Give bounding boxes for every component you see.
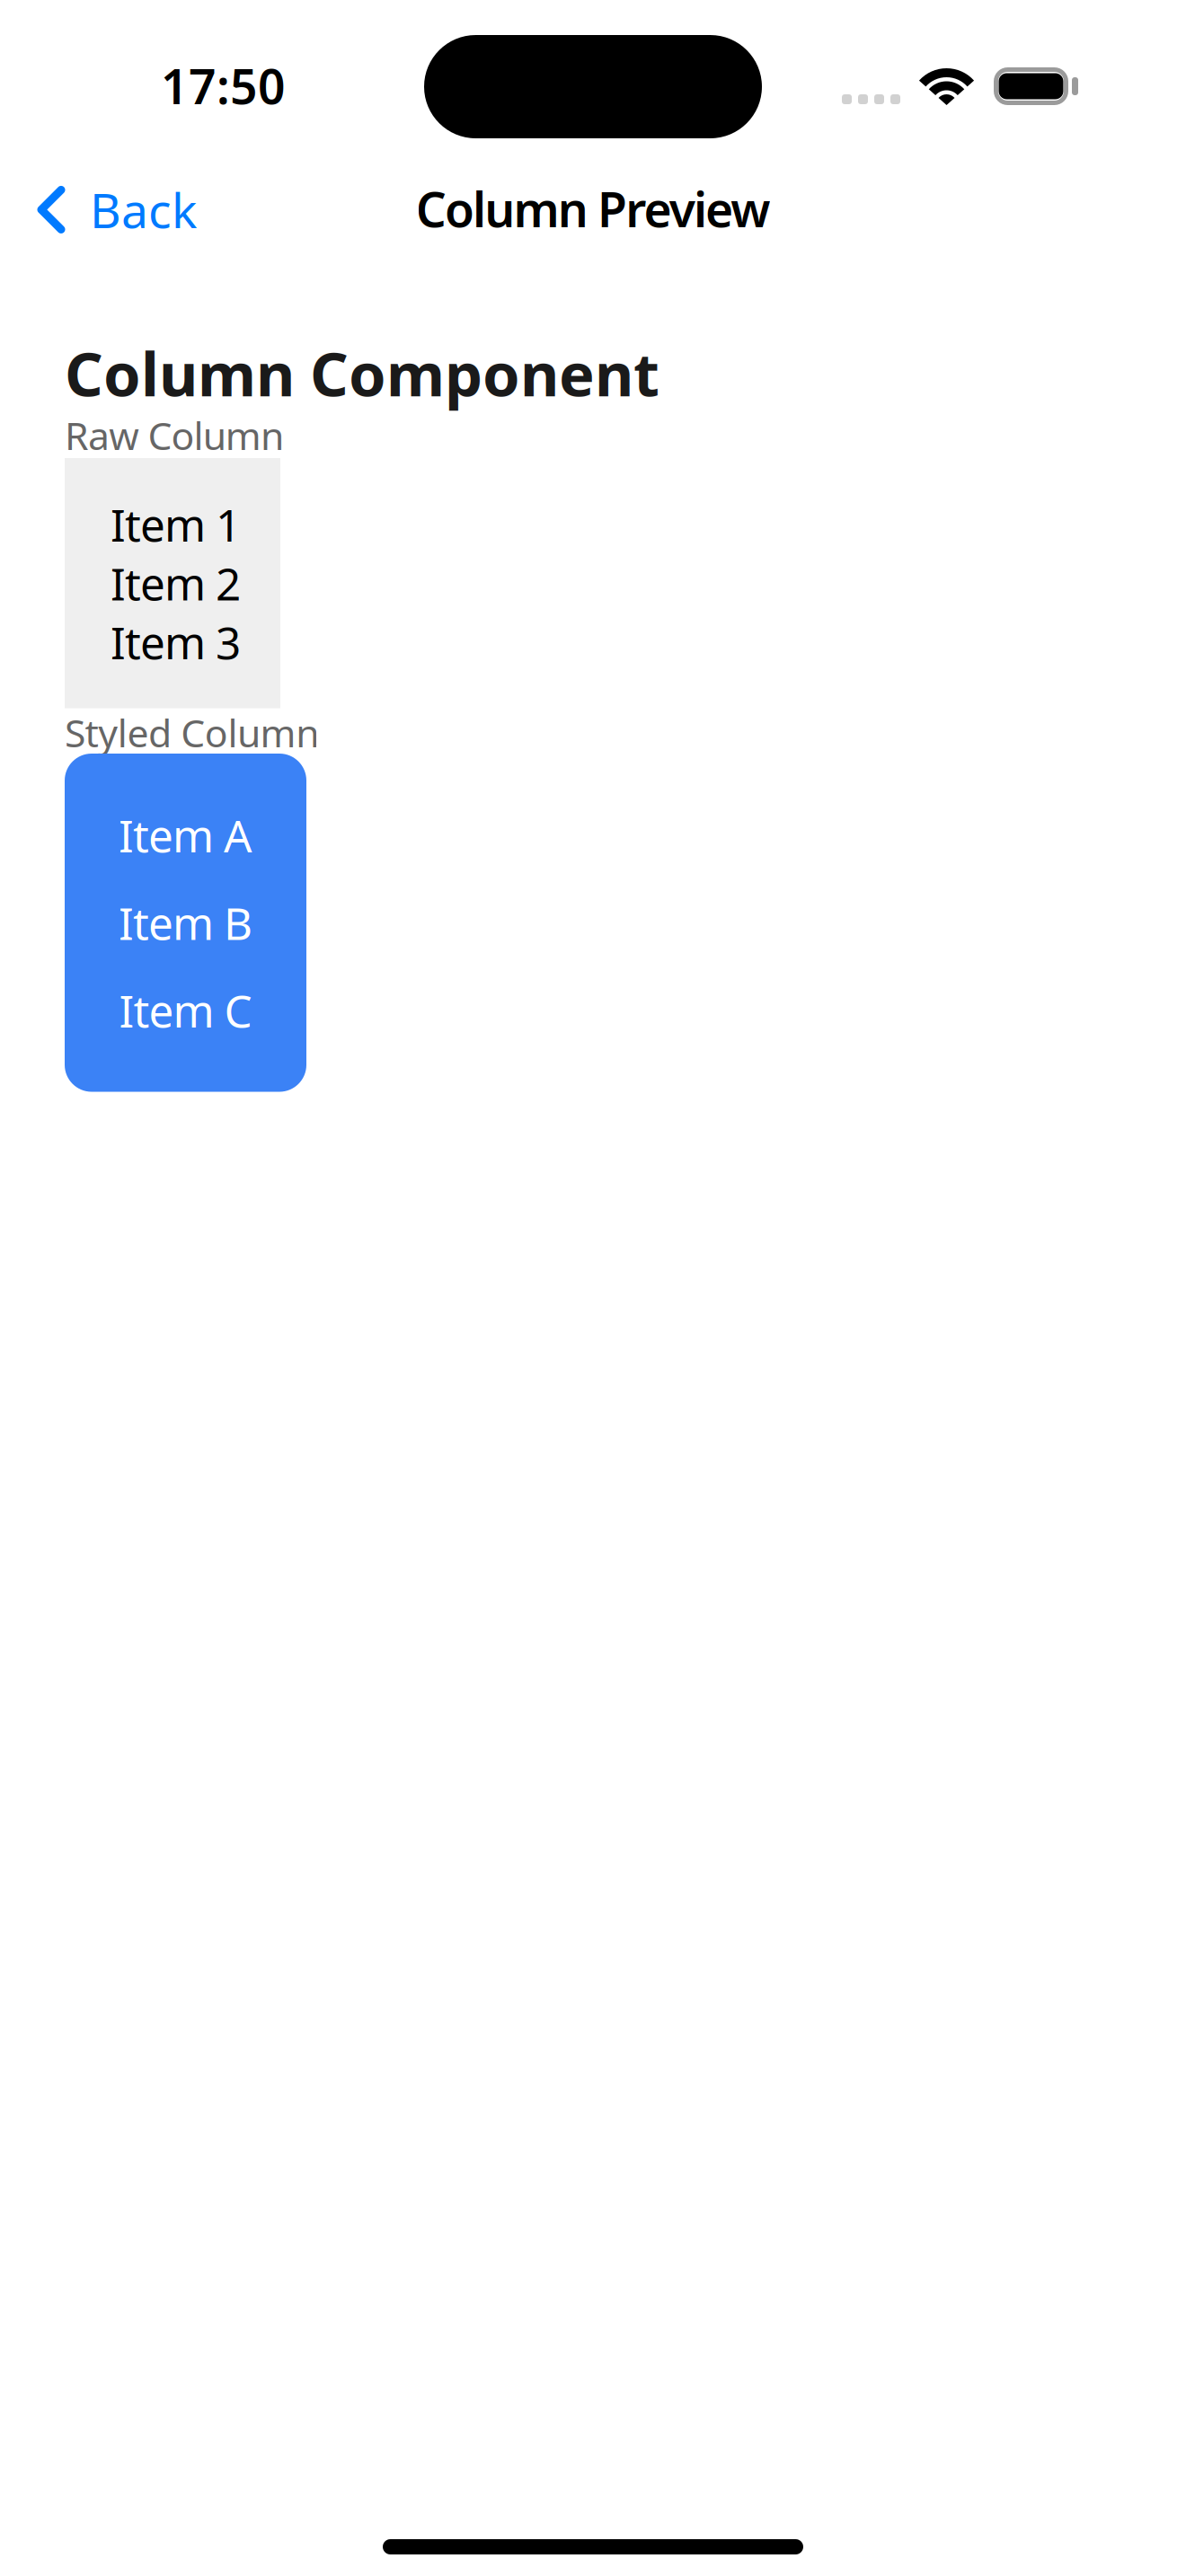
staticText: Back	[90, 178, 197, 241]
staticText: Column Preview	[416, 177, 770, 241]
staticText: Item B	[119, 893, 252, 952]
staticText: 17:50	[161, 54, 286, 117]
staticText: Item 2	[111, 554, 241, 613]
staticText: Item 1	[111, 495, 241, 554]
staticText: Column Component	[65, 333, 659, 413]
button[interactable]: Back	[0, 162, 220, 258]
staticText: Item A	[119, 806, 252, 865]
staticText: Styled Column	[65, 707, 319, 758]
staticText: Raw Column	[65, 410, 284, 461]
staticText: Item 3	[111, 613, 241, 671]
staticText: Item C	[119, 981, 252, 1040]
